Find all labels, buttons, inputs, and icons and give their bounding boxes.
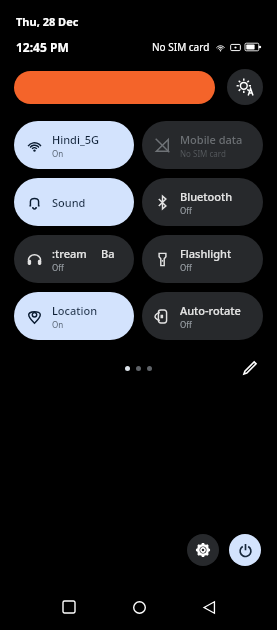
staticText: 12:45 PM bbox=[16, 39, 69, 55]
staticText: Hindi_5G bbox=[52, 132, 99, 147]
button[interactable]: Edit tiles bbox=[239, 357, 261, 379]
button[interactable]: Location bbox=[14, 292, 134, 340]
button[interactable]: Bluetooth bbox=[142, 178, 263, 226]
button[interactable]: :tream bbox=[14, 235, 134, 283]
button[interactable]: Brightness bbox=[14, 71, 215, 104]
staticText: Thu, 28 Dec bbox=[16, 14, 79, 29]
staticText: On bbox=[52, 148, 64, 159]
staticText: Off bbox=[52, 262, 64, 273]
staticText: Sound bbox=[52, 195, 86, 210]
button[interactable]: Auto brightness bbox=[227, 69, 263, 105]
staticText: Off bbox=[180, 205, 192, 216]
staticText: Auto-rotate bbox=[180, 303, 241, 318]
staticText: Off bbox=[180, 262, 192, 273]
staticText: No SIM card bbox=[152, 40, 210, 54]
staticText: Ba bbox=[101, 246, 115, 261]
staticText: Flashlight bbox=[180, 246, 232, 261]
staticText: Mobile data bbox=[180, 132, 243, 147]
button[interactable]: Back bbox=[187, 590, 231, 624]
staticText: Bluetooth bbox=[180, 189, 233, 204]
staticText: No SIM card bbox=[180, 148, 226, 159]
button[interactable]: Home bbox=[117, 590, 161, 624]
button[interactable]: Auto-rotate bbox=[142, 292, 263, 340]
button[interactable]: Recents bbox=[47, 590, 91, 624]
staticText: :tream bbox=[52, 246, 87, 261]
staticText: On bbox=[52, 319, 64, 330]
staticText: Off bbox=[180, 319, 192, 330]
button[interactable]: Settings bbox=[187, 534, 219, 566]
button[interactable]: Mobile data bbox=[142, 121, 263, 169]
button[interactable]: Flashlight bbox=[142, 235, 263, 283]
staticText: Location bbox=[52, 303, 98, 318]
button[interactable]: Hindi_5G bbox=[14, 121, 134, 169]
button[interactable]: Power bbox=[229, 534, 261, 566]
button[interactable]: Sound bbox=[14, 178, 134, 226]
